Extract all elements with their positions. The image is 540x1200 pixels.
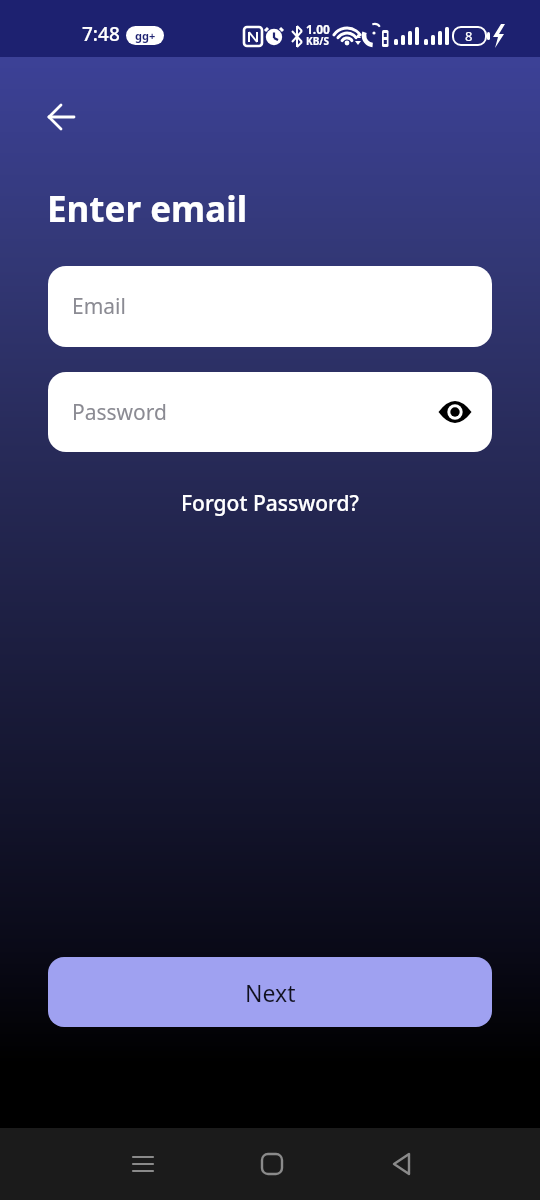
staticText: Email [72,292,126,321]
staticText: 8 [465,27,473,45]
staticText: gg+ [135,28,156,43]
button[interactable]: Password [48,372,492,452]
button[interactable]: Forgot Password? [181,489,359,518]
button[interactable] [437,394,473,430]
button[interactable] [40,96,82,138]
staticText: 1.00 [306,21,330,37]
staticText: Password [72,398,167,427]
button[interactable] [387,1149,417,1179]
button[interactable] [128,1149,158,1179]
staticText: Enter email [47,185,248,233]
staticText: Next [245,977,296,1008]
button[interactable]: Next [48,957,492,1027]
button[interactable] [257,1149,287,1179]
staticText: KB/S [306,34,329,48]
staticText: 7:48 [82,21,120,47]
button[interactable]: Email [48,266,492,347]
